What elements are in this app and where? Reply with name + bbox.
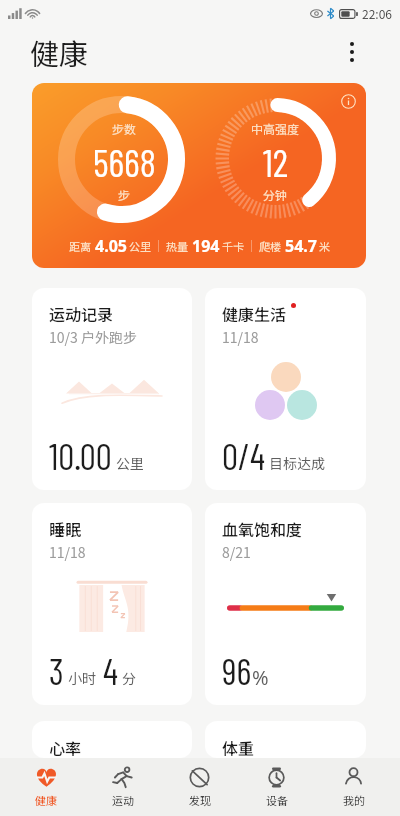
staticText: 运动 xyxy=(112,792,134,808)
staticText: 健康生活 xyxy=(222,302,287,325)
staticText: 血氧饱和度 xyxy=(222,517,303,540)
staticText: 54.7 xyxy=(285,235,317,257)
staticText: 5668 xyxy=(93,139,156,185)
button[interactable]: Info xyxy=(32,83,366,268)
staticText: 体重 xyxy=(222,736,255,758)
staticText: 心率 xyxy=(49,736,82,758)
staticText: 10/3 户外跑步 xyxy=(49,327,137,347)
staticText: 爬楼 xyxy=(259,238,281,254)
button[interactable]: 睡眠 xyxy=(32,503,192,705)
staticText: 步数 xyxy=(112,120,137,137)
button[interactable]: 心率 xyxy=(32,721,192,758)
staticText: 0/4 xyxy=(222,434,265,477)
button[interactable]: 运动 xyxy=(84,758,161,816)
staticText: 中高强度 xyxy=(251,120,300,137)
button[interactable]: 血氧饱和度 xyxy=(205,503,366,705)
staticText: 分 xyxy=(122,668,136,688)
staticText: 公里 xyxy=(129,238,151,254)
staticText: 距离 xyxy=(69,238,91,254)
staticText: 目标达成 xyxy=(269,453,325,473)
staticText: 千卡 xyxy=(222,238,244,254)
staticText: 22:06 xyxy=(362,5,392,22)
staticText: 热量 xyxy=(166,238,188,254)
staticText: 8/21 xyxy=(222,542,251,562)
button[interactable]: 体重 xyxy=(205,721,366,758)
staticText: 运动记录 xyxy=(49,302,114,325)
staticText: 设备 xyxy=(266,792,288,808)
staticText: 小时 xyxy=(68,668,96,688)
staticText: 发现 xyxy=(189,792,211,808)
staticText: 分钟 xyxy=(263,186,288,203)
staticText: 194 xyxy=(192,235,220,257)
button[interactable]: 设备 xyxy=(238,758,315,816)
button[interactable]: 健康生活 xyxy=(205,288,366,490)
button[interactable]: More options xyxy=(336,36,368,68)
button[interactable]: 健康 xyxy=(8,758,84,816)
staticText: 公里 xyxy=(116,453,144,473)
staticText: 米 xyxy=(319,238,330,254)
staticText: 12 xyxy=(263,139,289,185)
staticText: 健康 xyxy=(35,792,57,808)
button[interactable]: 发现 xyxy=(161,758,238,816)
staticText: 96 xyxy=(222,649,252,692)
staticText: 3 xyxy=(49,649,64,692)
button[interactable]: 我的 xyxy=(315,758,392,816)
button[interactable]: Info xyxy=(336,89,360,113)
staticText: 我的 xyxy=(343,792,365,808)
staticText: 4.05 xyxy=(95,235,127,257)
staticText: 11/18 xyxy=(222,327,259,347)
staticText: % xyxy=(252,664,269,691)
staticText: 11/18 xyxy=(49,542,86,562)
staticText: 睡眠 xyxy=(49,517,82,540)
staticText: 4 xyxy=(103,649,118,692)
staticText: 步 xyxy=(118,186,131,203)
button[interactable]: 运动记录 xyxy=(32,288,192,490)
staticText: 10.00 xyxy=(49,434,112,477)
staticText: 健康 xyxy=(30,31,89,73)
